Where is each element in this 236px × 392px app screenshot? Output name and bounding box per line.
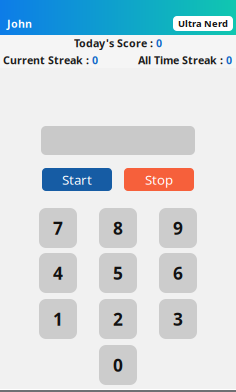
staticText: Ultra Nerd <box>178 17 228 30</box>
staticText: 1 <box>53 307 63 330</box>
button[interactable]: Stop <box>124 168 194 191</box>
staticText: 9 <box>173 216 183 239</box>
button[interactable]: Start <box>42 168 112 191</box>
button[interactable]: 8 <box>99 208 137 248</box>
button[interactable]: 1 <box>39 299 77 339</box>
button[interactable]: 6 <box>159 253 197 293</box>
staticText: Stop <box>145 171 173 188</box>
button[interactable]: 4 <box>39 253 77 293</box>
staticText: All Time Streak : <box>138 53 226 67</box>
staticText: Start <box>62 171 92 188</box>
staticText: Current Streak : <box>3 53 92 67</box>
button[interactable]: 0 <box>99 345 137 385</box>
staticText: 0 <box>92 53 98 67</box>
staticText: Today's Score : <box>74 36 156 50</box>
button[interactable]: John <box>7 16 32 31</box>
button[interactable]: 5 <box>99 253 137 293</box>
staticText: 4 <box>53 261 63 284</box>
staticText: 8 <box>113 216 123 239</box>
staticText: 3 <box>173 307 183 330</box>
staticText: 0 <box>226 53 232 67</box>
staticText: 6 <box>173 261 183 284</box>
button[interactable]: Ultra Nerd <box>173 16 233 31</box>
button[interactable]: 7 <box>39 208 77 248</box>
staticText: 2 <box>113 307 123 330</box>
staticText: 5 <box>113 261 123 284</box>
staticText: 0 <box>113 353 123 376</box>
button[interactable]: 9 <box>159 208 197 248</box>
staticText: John <box>7 16 32 31</box>
staticText: 7 <box>53 216 63 239</box>
staticText: 0 <box>156 36 162 50</box>
button[interactable]: 3 <box>159 299 197 339</box>
button[interactable]: 2 <box>99 299 137 339</box>
